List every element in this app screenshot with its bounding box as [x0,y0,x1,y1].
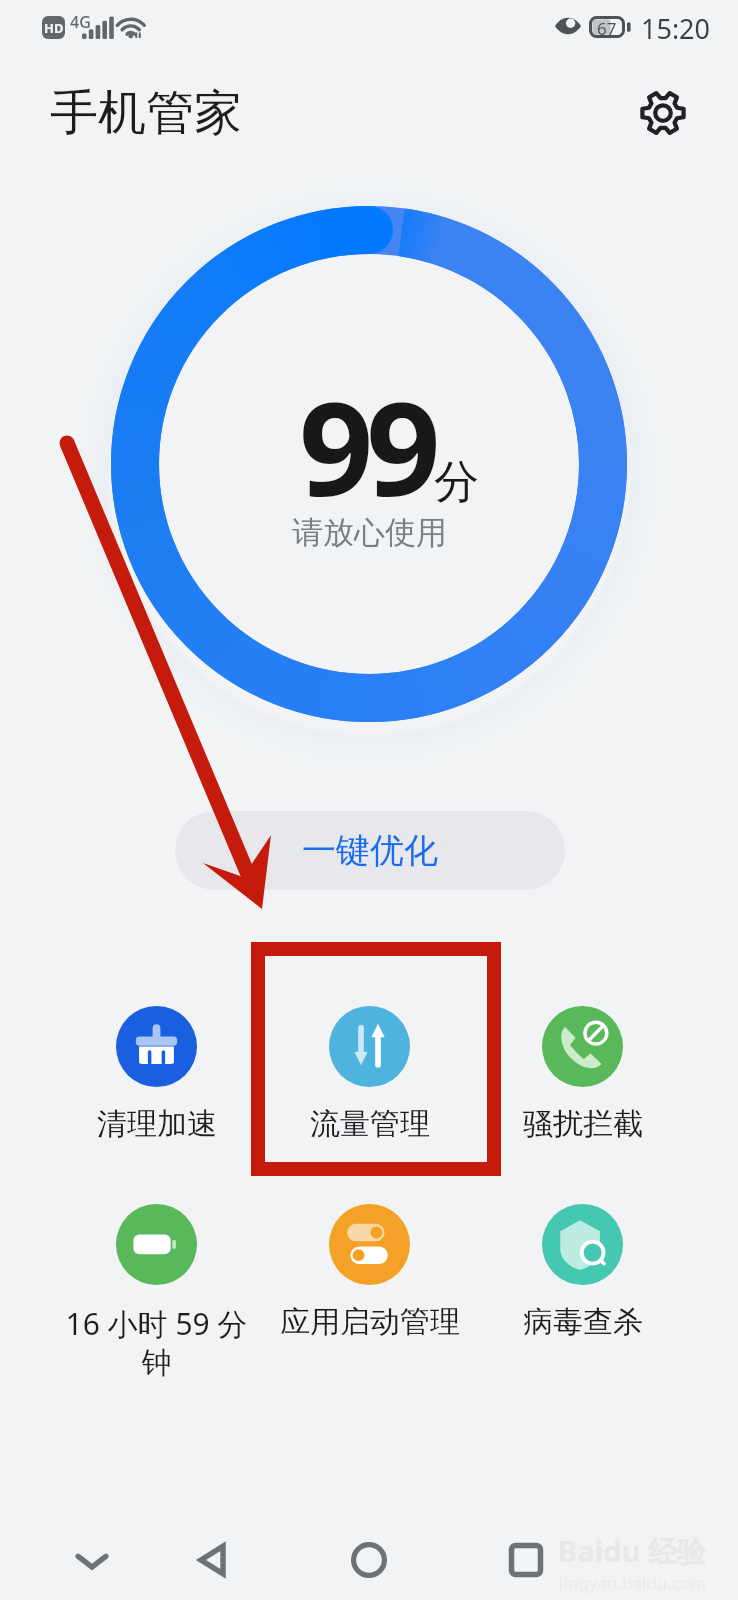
staticText: 15:20 [641,10,711,47]
button[interactable]: 应用启动管理 [270,1190,469,1389]
button[interactable]: 骚扰拦截 [483,992,682,1191]
button[interactable]: 清理加速 [57,992,256,1191]
button[interactable]: 16 小时 59 分钟 [57,1190,256,1389]
staticText: 病毒查杀 [523,1303,643,1341]
staticText: 手机管家 [50,83,242,143]
button[interactable]: 一键优化 [175,811,565,890]
button[interactable]: 病毒查杀 [483,1190,682,1389]
button[interactable]: Hide [52,1520,132,1600]
button[interactable]: Home [329,1520,409,1600]
staticText: 一键优化 [302,829,438,872]
staticText: HD [44,19,64,37]
staticText: 应用启动管理 [280,1303,460,1341]
staticText: 99 [299,357,434,534]
staticText: 4G [70,11,91,33]
staticText: 67 [597,17,617,40]
staticText: 16 小时 59 分钟 [57,1303,256,1382]
staticText: Baidu 经验 [558,1531,707,1571]
staticText: 清理加速 [97,1105,217,1143]
staticText: 分 [434,454,479,511]
staticText: 请放心使用 [292,513,447,552]
staticText: 流量管理 [310,1105,430,1143]
button[interactable]: 流量管理 [270,992,469,1191]
staticText: 骚扰拦截 [523,1105,643,1143]
button[interactable]: Back [172,1520,252,1600]
button[interactable]: Recents [486,1520,566,1600]
button[interactable]: Settings [636,86,690,140]
